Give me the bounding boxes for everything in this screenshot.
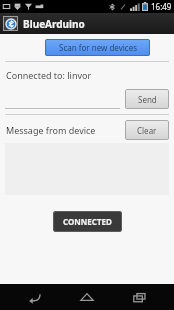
staticText: BlueArduino [23,17,85,31]
button[interactable] [5,89,125,109]
staticText: Message from device [6,124,96,136]
staticText: 16:49 [151,1,172,12]
button[interactable]: Recent apps [122,284,156,310]
staticText: Connected to: linvor [6,69,92,81]
button[interactable]: Clear [125,120,169,140]
staticText: Send [138,94,157,105]
button[interactable]: Home [70,284,104,310]
staticText: CONNECTED [63,216,112,227]
staticText: Scan for new devices [59,42,137,53]
button[interactable]: Scan for new devices [45,39,150,56]
staticText: Clear [137,125,157,136]
button[interactable]: Send [125,89,169,109]
button[interactable]: Back [18,284,52,310]
